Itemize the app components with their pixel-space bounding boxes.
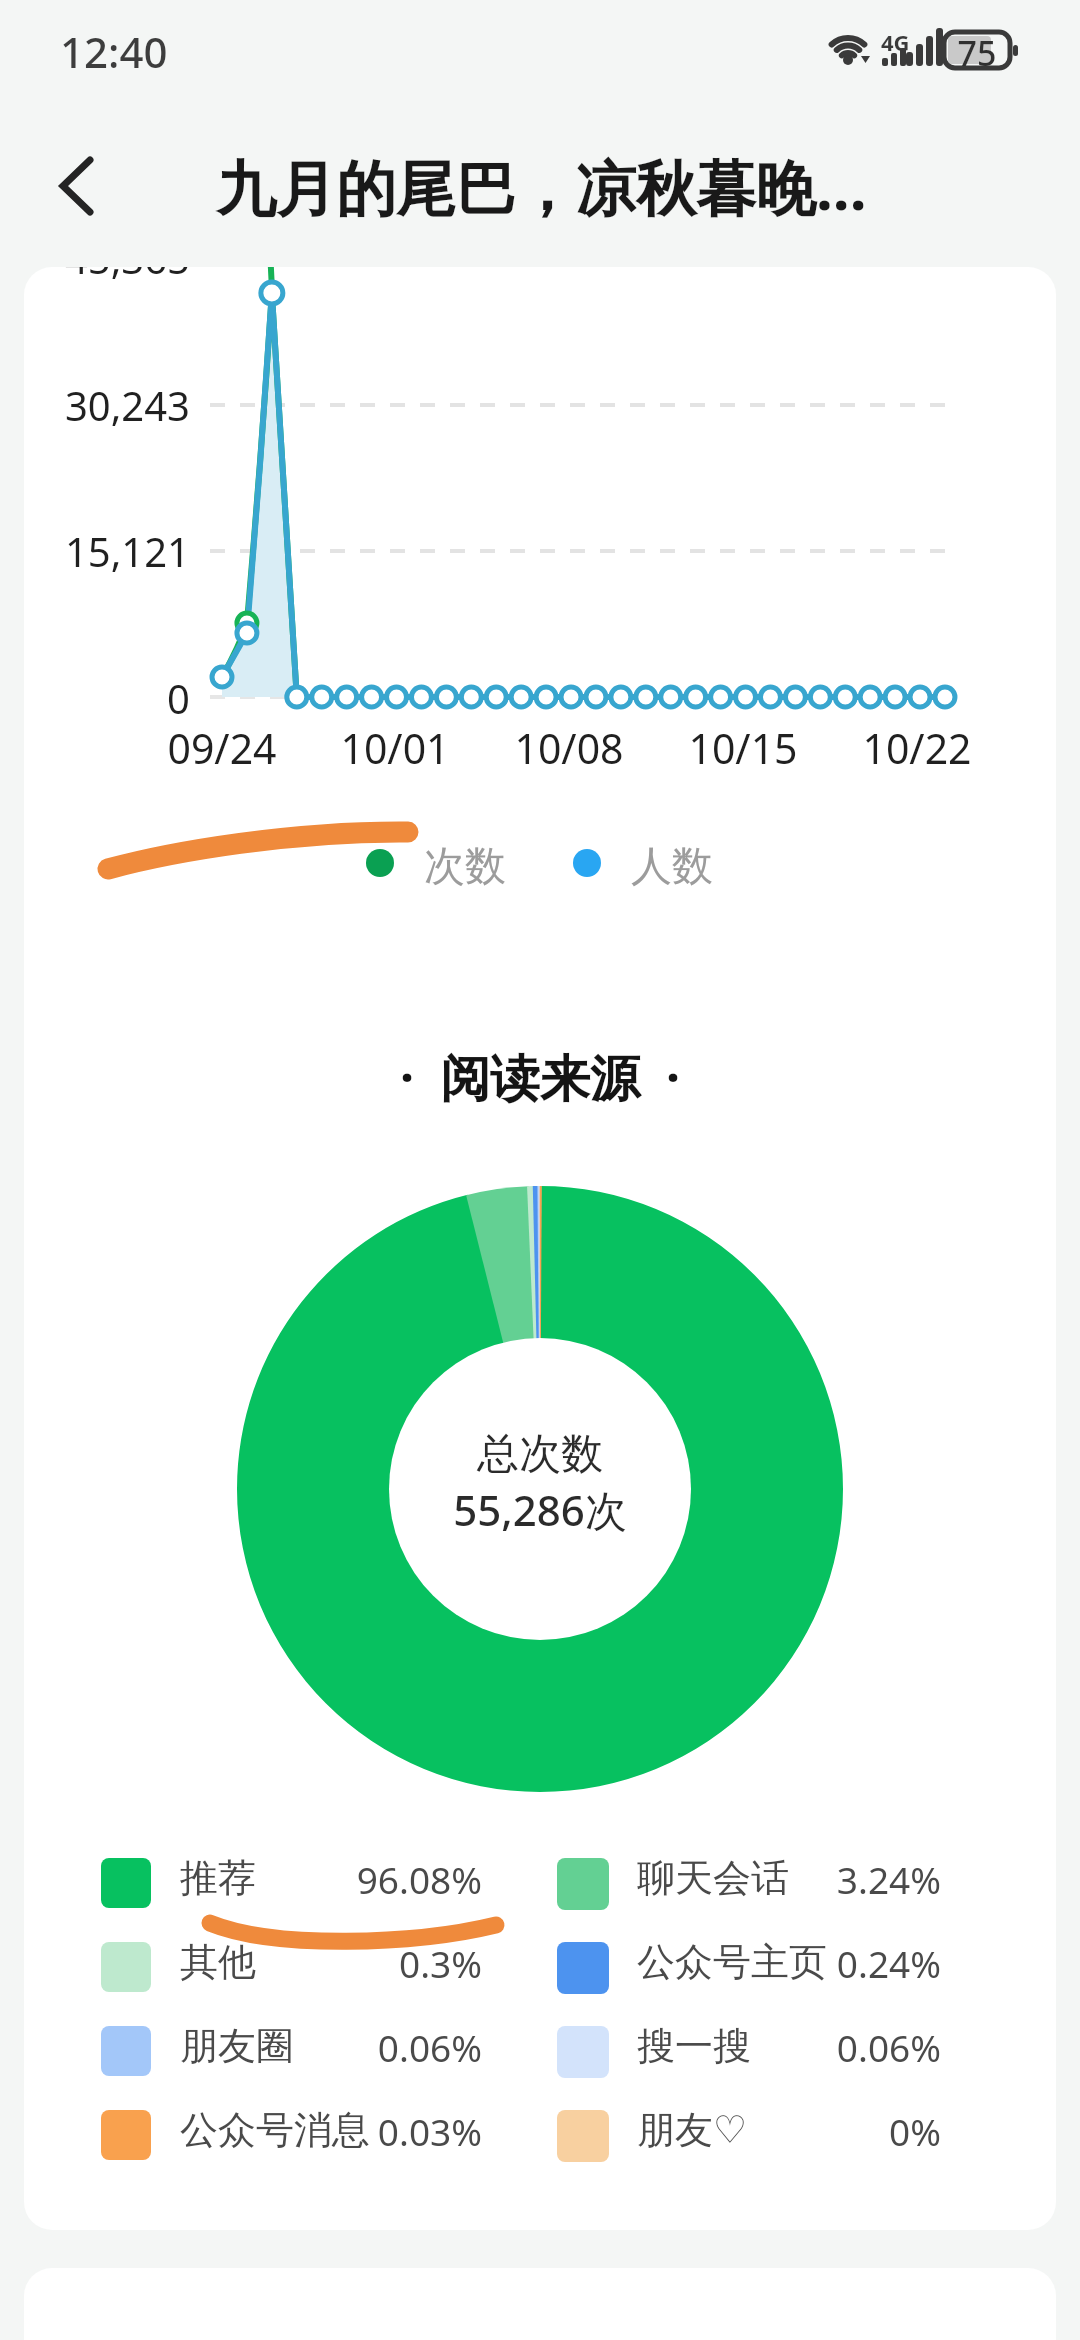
staticText: 聊天会话	[637, 1854, 789, 1902]
button[interactable]	[101, 1858, 151, 1908]
button[interactable]	[557, 2026, 609, 2078]
staticText: 10/22	[837, 720, 997, 776]
staticText: 96.08%	[284, 1854, 482, 1904]
staticText: 0.06%	[284, 2022, 482, 2072]
staticText: 0.06%	[744, 2022, 941, 2072]
staticText: 12:40	[60, 23, 168, 80]
staticText: 4G	[881, 27, 910, 57]
button[interactable]	[40, 146, 120, 226]
staticText: 3.24%	[744, 1854, 941, 1904]
button[interactable]	[101, 2026, 151, 2076]
staticText: 九月的尾巴，凉秋暮晚...	[216, 146, 867, 228]
staticText: 公众号消息	[180, 2106, 370, 2154]
staticText: 朋友圈	[180, 2022, 294, 2070]
staticText: 朋友♡	[637, 2106, 748, 2154]
button[interactable]	[557, 1942, 609, 1994]
staticText: 10/01	[315, 720, 475, 776]
staticText: 其他	[180, 1938, 256, 1986]
staticText: · 阅读来源 ·	[24, 1043, 1056, 1111]
button[interactable]	[557, 2110, 609, 2162]
staticText: 09/24	[142, 720, 302, 776]
staticText: 0.3%	[284, 1938, 482, 1988]
staticText: 55,286次	[24, 1481, 1056, 1538]
staticText: 总次数	[24, 1428, 1056, 1481]
staticText: 10/15	[663, 720, 823, 776]
staticText: 搜一搜	[637, 2022, 751, 2070]
staticText: 0	[54, 671, 190, 725]
staticText: 10/08	[489, 720, 649, 776]
staticText: 人数	[631, 841, 713, 893]
button[interactable]	[101, 2110, 151, 2160]
staticText: 0%	[744, 2106, 941, 2156]
staticText: 75	[957, 30, 997, 76]
staticText: 30,243	[54, 378, 190, 432]
button[interactable]	[101, 1942, 151, 1992]
staticText: 次数	[424, 841, 506, 893]
staticText: 推荐	[180, 1854, 256, 1902]
staticText: 0.03%	[284, 2106, 482, 2156]
staticText: 公众号主页	[637, 1938, 827, 1986]
staticText: 0.24%	[744, 1938, 941, 1988]
staticText: 15,121	[54, 524, 190, 578]
button[interactable]	[557, 1858, 609, 1910]
staticText: 45,365	[54, 267, 190, 285]
